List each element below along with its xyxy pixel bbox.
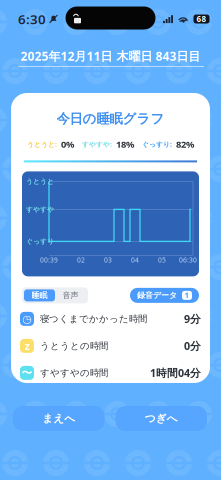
button[interactable]: z: [11, 332, 210, 359]
staticText: 68: [196, 14, 206, 24]
staticText: 06:30: [179, 255, 197, 264]
staticText: 18%: [116, 138, 134, 150]
button[interactable]: つぎへ: [115, 406, 207, 431]
staticText: 05: [158, 255, 166, 264]
button[interactable]: ◷: [11, 305, 210, 332]
staticText: すやすや: [26, 205, 54, 214]
staticText: 音声: [62, 290, 78, 300]
staticText: うとうとの時間: [40, 340, 108, 352]
staticText: 1時間04分: [150, 366, 201, 380]
staticText: ◷: [22, 313, 31, 325]
staticText: 0分: [184, 339, 201, 353]
button[interactable]: 睡眠: [24, 289, 55, 301]
staticText: 2025年12月11日 木曜日 843日目: [20, 48, 200, 64]
staticText: すやすやの時間: [40, 367, 108, 379]
staticText: 02: [77, 255, 85, 264]
staticText: 寝つくまでかかった時間: [40, 313, 147, 325]
staticText: 6:30: [18, 10, 46, 28]
button[interactable]: 〜: [11, 359, 210, 386]
staticText: 04: [131, 255, 139, 264]
button[interactable]: 音声: [55, 289, 86, 301]
staticText: すやすや:: [82, 140, 112, 149]
button[interactable]: まえへ: [13, 406, 104, 431]
staticText: 〜: [21, 366, 32, 379]
staticText: 00:39: [40, 255, 58, 264]
staticText: まえへ: [42, 412, 75, 425]
staticText: 82%: [176, 138, 194, 150]
staticText: 0%: [61, 138, 74, 150]
staticText: 睡眠: [31, 290, 47, 300]
staticText: 03: [104, 255, 112, 264]
staticText: 今日の睡眠グラフ: [56, 111, 164, 127]
staticText: 9分: [184, 312, 201, 326]
staticText: ぐっすり: [26, 237, 54, 246]
staticText: 1: [184, 290, 189, 301]
staticText: うとうと:: [27, 140, 57, 149]
button[interactable]: 録音データ: [130, 288, 199, 303]
staticText: つぎへ: [145, 412, 178, 425]
staticText: うとうと: [26, 177, 54, 186]
staticText: ぐっすり:: [142, 140, 172, 149]
staticText: z: [24, 339, 29, 353]
staticText: 録音データ: [137, 290, 177, 300]
